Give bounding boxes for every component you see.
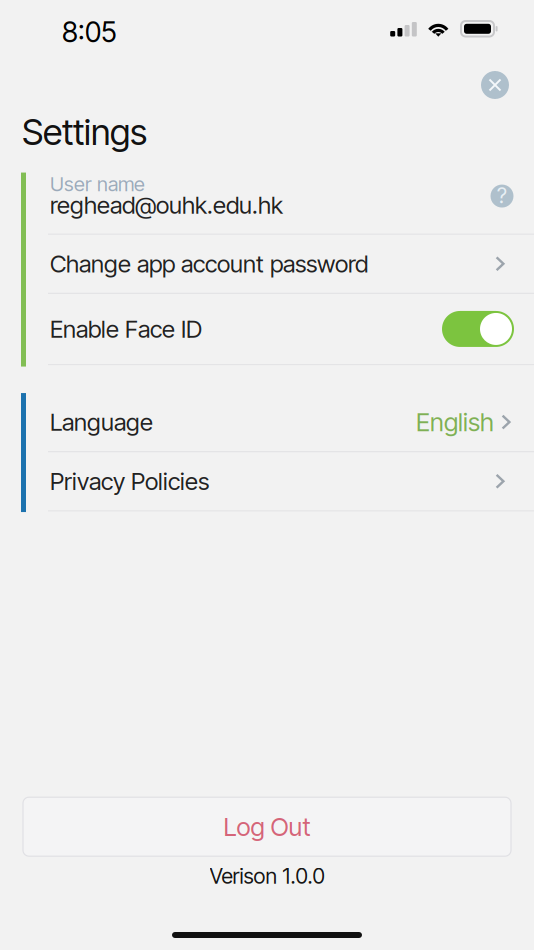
button[interactable]: Close bbox=[478, 68, 512, 102]
button[interactable]: Log Out bbox=[23, 797, 511, 856]
button[interactable]: Language bbox=[0, 393, 534, 451]
staticText: Log Out bbox=[223, 811, 310, 842]
staticText: 8:05 bbox=[62, 15, 117, 49]
button[interactable]: Enable Face ID bbox=[442, 311, 514, 347]
staticText: reghead@ouhk.edu.hk bbox=[50, 190, 283, 219]
button[interactable]: Change app account password bbox=[0, 235, 534, 293]
staticText: Language bbox=[50, 407, 153, 436]
button[interactable]: Help bbox=[487, 181, 517, 211]
staticText: English bbox=[416, 407, 494, 437]
staticText: User name bbox=[50, 172, 145, 196]
staticText: Change app account password bbox=[50, 249, 368, 278]
staticText: Enable Face ID bbox=[50, 314, 202, 343]
button[interactable]: Privacy Policies bbox=[0, 452, 534, 510]
staticText: Settings bbox=[22, 110, 147, 154]
staticText: Verison 1.0.0 bbox=[209, 863, 324, 889]
staticText: ? bbox=[497, 183, 507, 208]
staticText: Privacy Policies bbox=[50, 467, 209, 496]
